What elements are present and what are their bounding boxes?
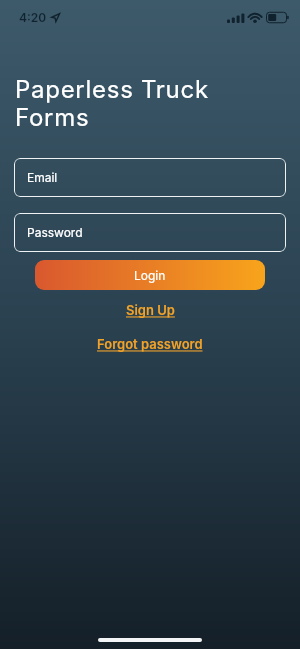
staticText: Email [27, 170, 58, 185]
button[interactable]: Forgot password [97, 336, 203, 352]
staticText: Sign Up [126, 302, 175, 318]
staticText: Forgot password [97, 336, 203, 352]
button[interactable]: Sign Up [126, 302, 175, 318]
button[interactable]: Email [14, 158, 286, 197]
button[interactable]: Login [35, 260, 265, 290]
staticText: Paperless Truck Forms [15, 75, 209, 131]
button[interactable]: Password [14, 213, 286, 252]
staticText: Password [27, 225, 83, 240]
staticText: 4:20 [19, 10, 47, 25]
staticText: Login [134, 268, 166, 283]
